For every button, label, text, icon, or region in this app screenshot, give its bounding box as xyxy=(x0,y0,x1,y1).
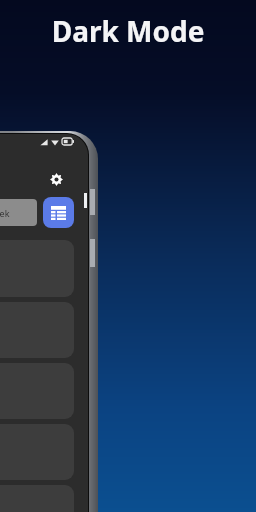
button[interactable]: Settings xyxy=(44,167,68,191)
button[interactable]: Table view xyxy=(43,197,74,228)
button[interactable]: Previous week xyxy=(0,199,37,226)
staticText: Dark Mode xyxy=(0,12,256,50)
staticText: Previous week xyxy=(0,207,10,219)
